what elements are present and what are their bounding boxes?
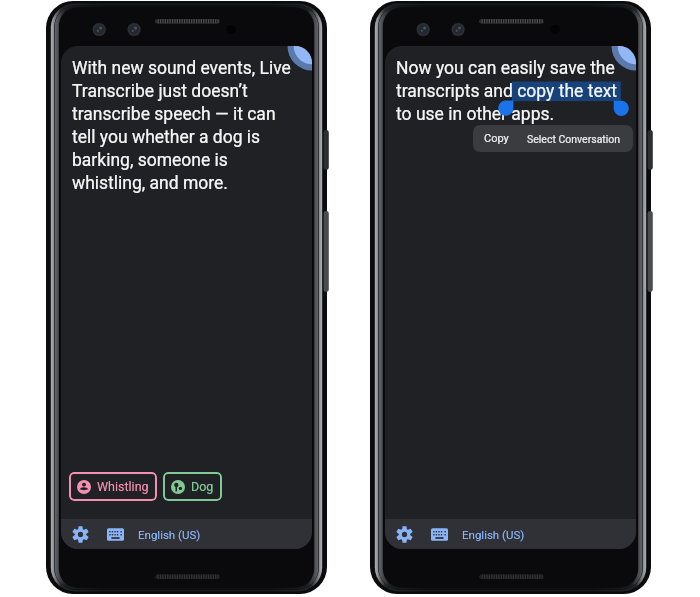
staticText: Copy [484,132,509,145]
staticText: English (US) [138,528,201,541]
button[interactable]: Whistling [69,472,157,501]
staticText: Whistling [97,479,149,494]
button[interactable]: English (US) [462,528,525,541]
button[interactable]: English (US) [138,528,201,541]
staticText: Now you can easily save the transcripts … [396,58,634,125]
button[interactable]: Keyboard [424,519,454,549]
staticText: Select Conversation [527,133,621,145]
button[interactable]: Settings [65,519,95,549]
staticText: English (US) [462,528,525,541]
button[interactable]: Keyboard [100,519,130,549]
button[interactable]: Copy [473,128,520,149]
staticText: Dog [191,479,214,494]
staticText: With new sound events, Live Transcribe j… [72,58,292,194]
button[interactable]: Settings [389,519,419,549]
button[interactable]: Select Conversation [520,129,633,149]
button[interactable]: Dog [163,472,222,501]
